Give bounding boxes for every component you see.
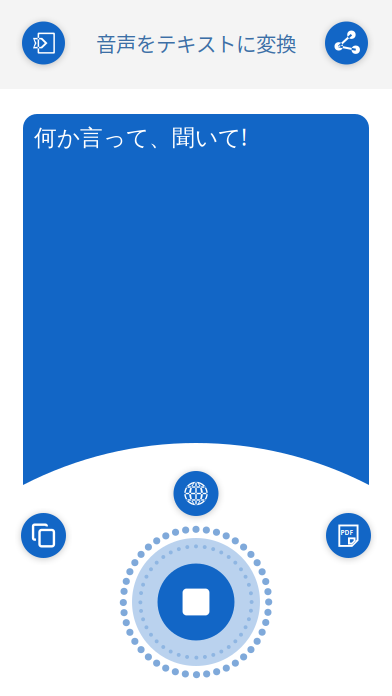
staticText: PDF — [340, 528, 353, 537]
staticText: 音声をテキストに変換 — [96, 28, 296, 58]
button[interactable]: Stop recording — [117, 523, 275, 681]
button[interactable]: Open document — [22, 21, 65, 64]
button[interactable]: Export as PDF — [326, 513, 371, 558]
button[interactable]: Copy text — [21, 513, 66, 558]
staticText: 何か言って、聞いて! — [34, 122, 247, 152]
button[interactable]: Language — [173, 471, 218, 516]
button[interactable]: Share — [325, 21, 368, 64]
